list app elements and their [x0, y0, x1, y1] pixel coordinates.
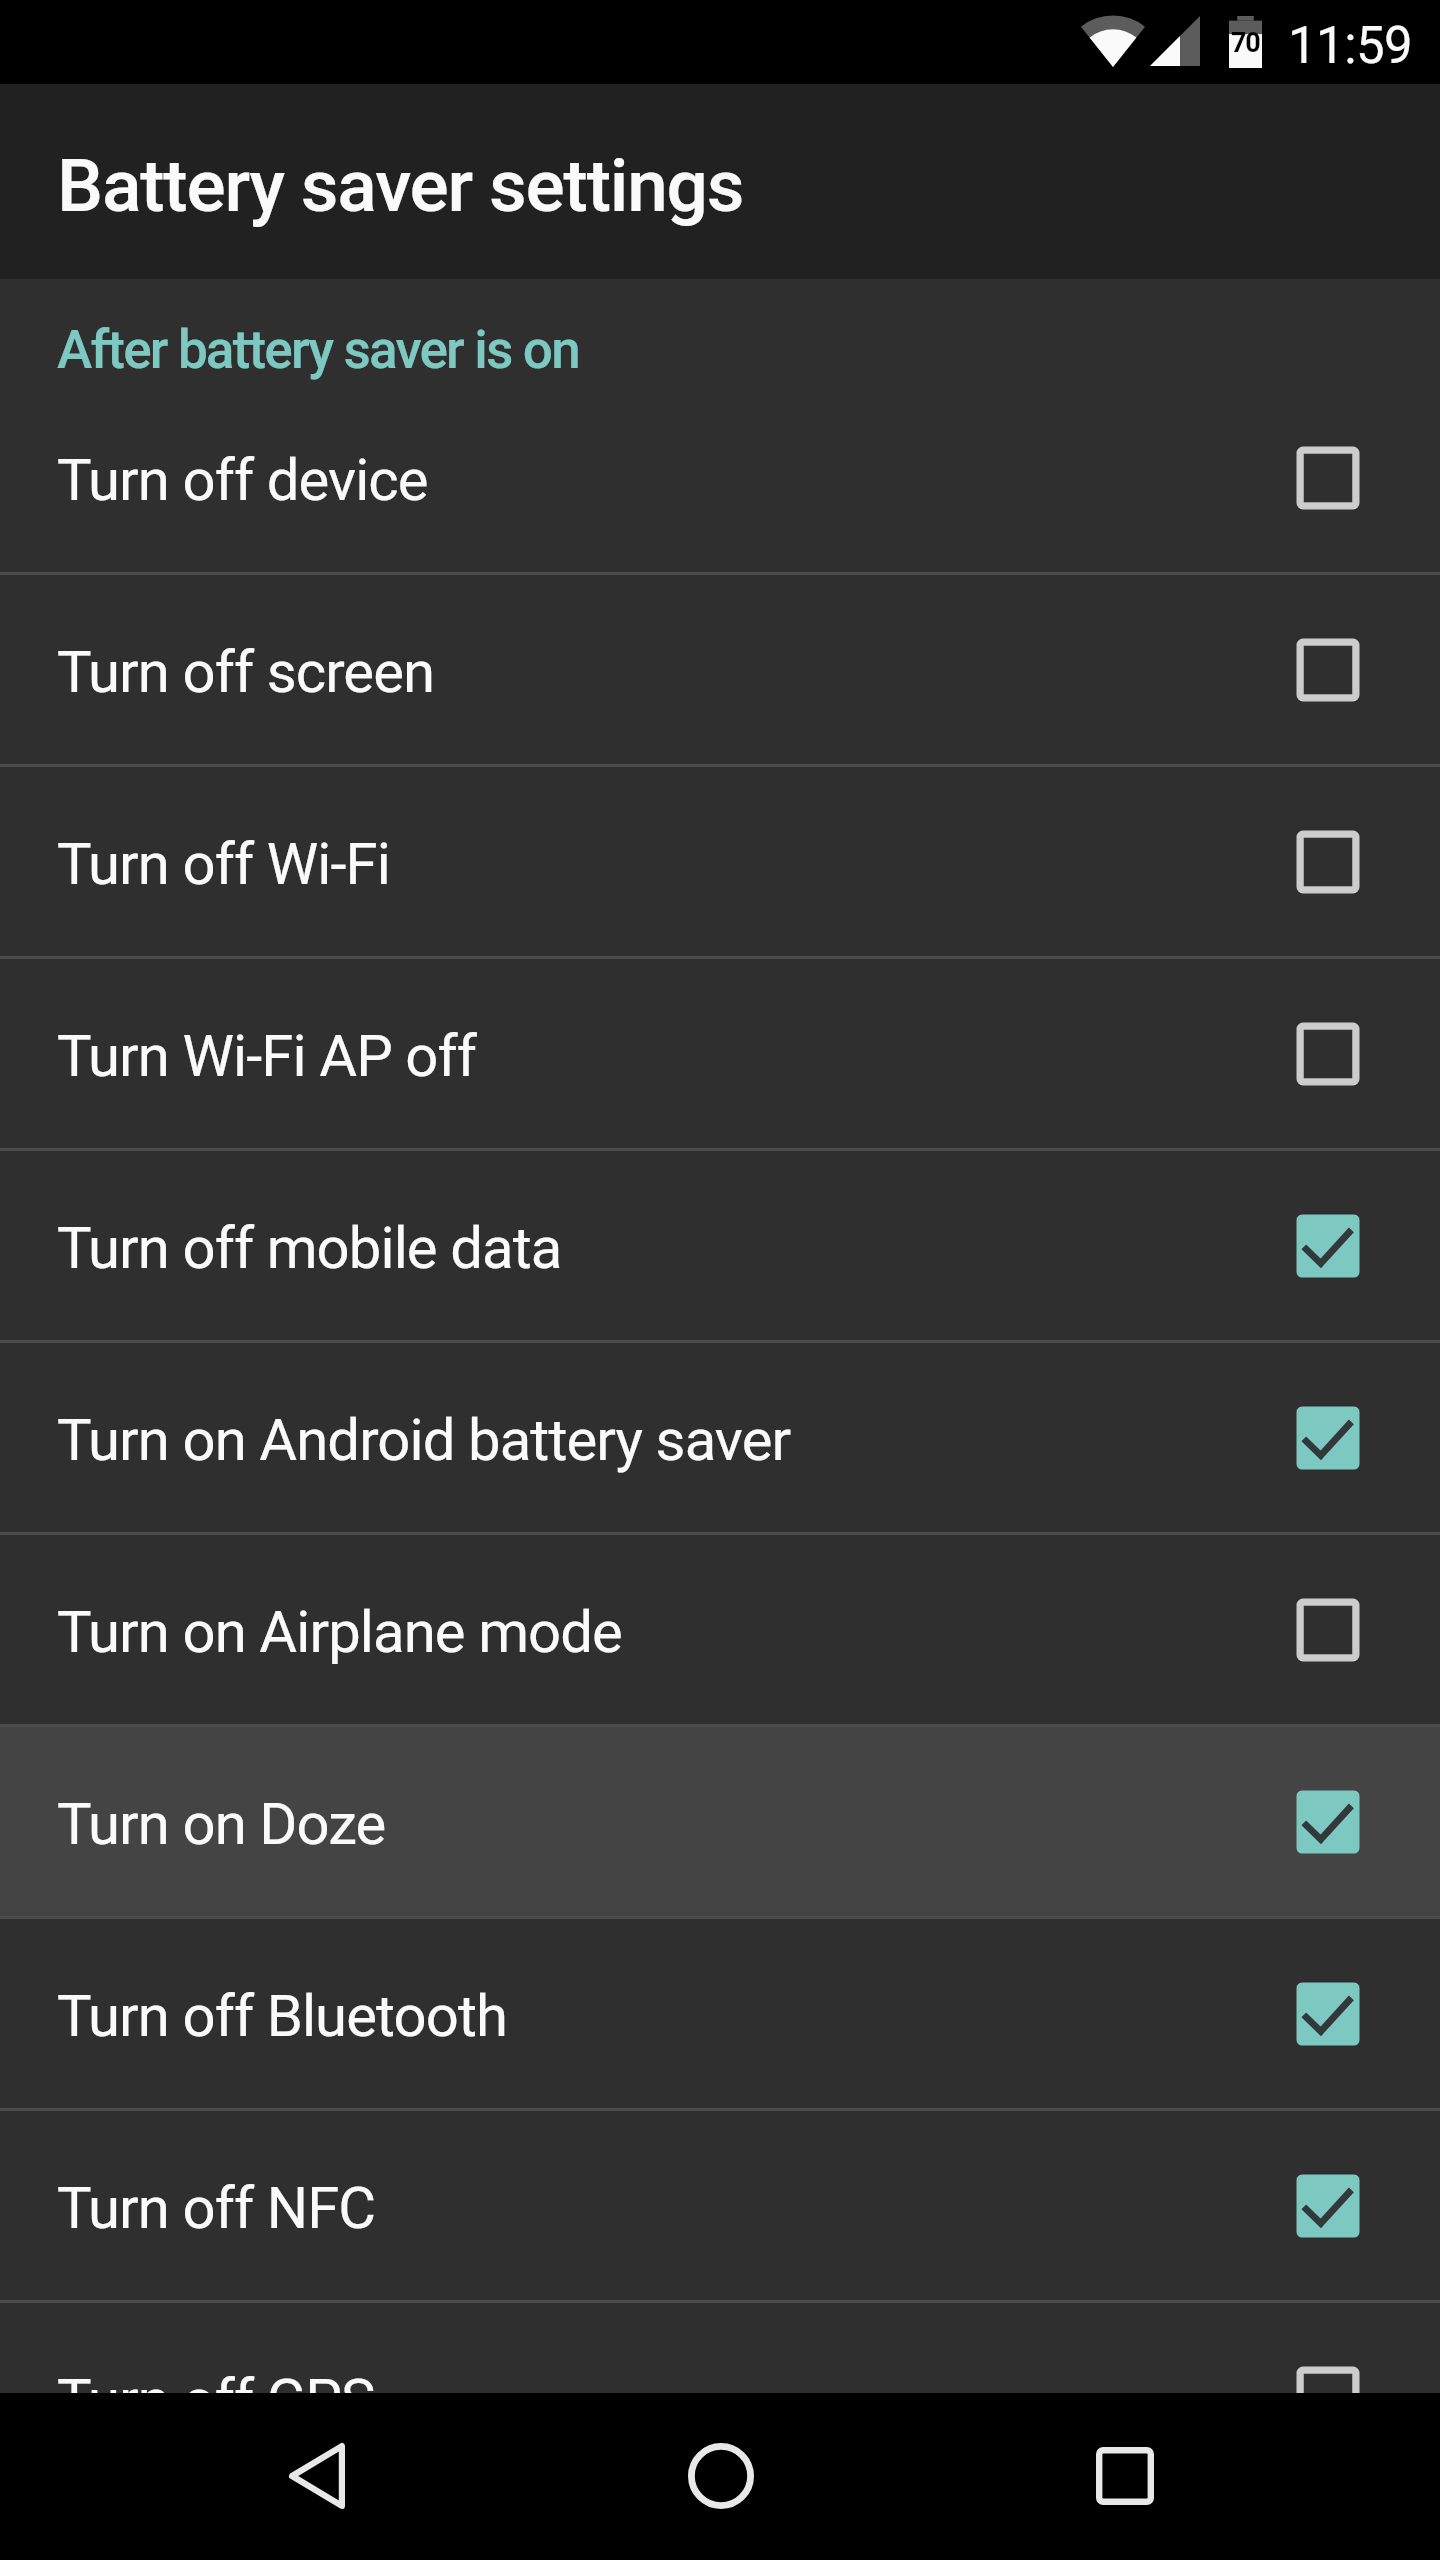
button[interactable]: Turn on Doze	[0, 1726, 1440, 1918]
staticText: 70	[1231, 27, 1260, 59]
button[interactable]: Turn off mobile data	[0, 1150, 1440, 1342]
staticText: Turn on Android battery saver	[57, 1406, 1296, 1474]
staticText: After battery saver is on	[57, 319, 579, 381]
staticText: Turn off NFC	[57, 2174, 1296, 2242]
staticText: Turn off device	[57, 446, 1296, 514]
staticText: Turn off mobile data	[57, 1214, 1296, 1282]
staticText: Turn off GPS	[57, 2366, 1296, 2434]
staticText: 11:59	[1288, 16, 1413, 76]
button[interactable]: Turn Wi-Fi AP off	[0, 958, 1440, 1150]
button[interactable]: Turn off screen	[0, 574, 1440, 766]
button[interactable]: Recents	[1035, 2393, 1215, 2559]
button[interactable]: Home	[631, 2393, 811, 2559]
button[interactable]: Turn off GPS	[0, 2302, 1440, 2494]
button[interactable]: Turn off Bluetooth	[0, 1918, 1440, 2110]
button[interactable]: Turn off NFC	[0, 2110, 1440, 2302]
button[interactable]: Turn off Wi-Fi	[0, 766, 1440, 958]
button[interactable]: Turn on Android battery saver	[0, 1342, 1440, 1534]
staticText: Turn off Bluetooth	[57, 1982, 1296, 2050]
staticText: Battery saver settings	[57, 143, 744, 229]
staticText: Turn Wi-Fi AP off	[57, 1022, 1296, 1090]
button[interactable]: Back	[227, 2393, 407, 2559]
button[interactable]: Turn off device	[0, 382, 1440, 574]
button[interactable]: Turn on Airplane mode	[0, 1534, 1440, 1726]
staticText: Turn off Wi-Fi	[57, 830, 1296, 898]
staticText: Turn off screen	[57, 638, 1296, 706]
staticText: Turn on Doze	[57, 1790, 1296, 1858]
staticText: Turn on Airplane mode	[57, 1598, 1296, 1666]
